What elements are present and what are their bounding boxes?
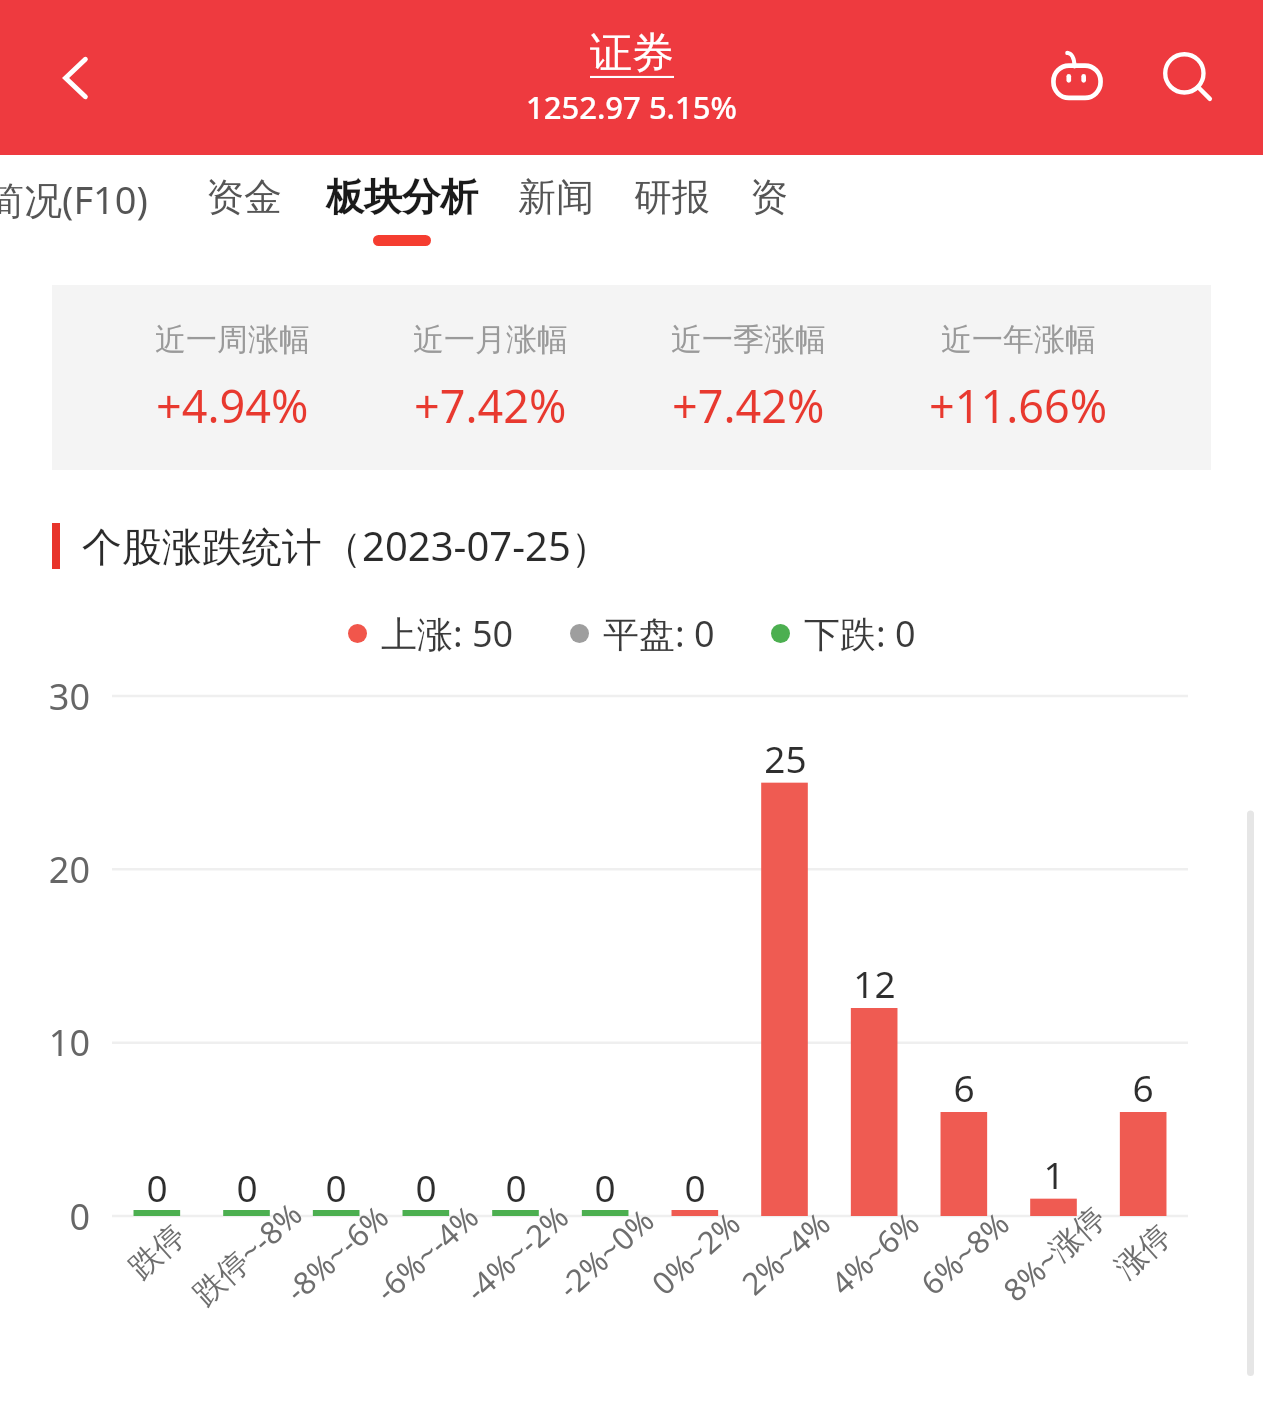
staticText: 0 [325,1162,347,1212]
staticText: 0%~2% [642,1202,748,1304]
staticText: 0 [594,1162,616,1212]
staticText: 0 [505,1162,527,1212]
staticText: +11.66% [929,375,1108,436]
staticText: 资金 [206,173,282,221]
staticText: 资 [750,173,788,221]
staticText: 平盘: 0 [603,609,715,658]
button[interactable]: 资金 [206,155,282,235]
staticText: 研报 [634,173,710,221]
staticText: 下跌: 0 [804,609,916,658]
staticText: 4%~6% [821,1202,927,1304]
button[interactable]: 资 [750,155,788,235]
staticText: 新闻 [518,173,594,221]
staticText: 证券 [590,27,674,80]
staticText: 25 [764,733,807,783]
staticText: 0 [69,1192,90,1241]
button[interactable]: 近一年涨幅 [929,320,1108,436]
staticText: +7.42% [414,375,567,436]
staticText: 1 [1043,1149,1065,1199]
staticText: 跌停 [121,1216,193,1287]
staticText: 1252.97 5.15% [526,86,737,128]
staticText: 30 [48,672,90,721]
button[interactable]: 近一月涨幅 [413,320,568,436]
button[interactable]: 新闻 [518,155,594,235]
staticText: -2%~0% [549,1199,662,1307]
button[interactable]: 简况(F10) [0,155,148,239]
button[interactable]: 下跌: 0 [771,609,916,658]
button[interactable]: 板块分析 [326,155,478,246]
staticText: 近一周涨幅 [155,320,310,359]
staticText: 12 [853,958,896,1008]
button[interactable]: 近一周涨幅 [155,320,310,436]
staticText: -6%~-4% [366,1196,487,1310]
staticText: 0 [684,1162,706,1212]
staticText: 跌停~-8% [183,1193,311,1313]
staticText: +7.42% [672,375,825,436]
staticText: -4%~-2% [456,1196,577,1310]
staticText: 10 [48,1018,90,1067]
staticText: 6%~8% [911,1202,1017,1304]
button[interactable]: Assistant robot [1029,30,1125,126]
button[interactable]: 上涨: 50 [348,609,514,658]
staticText: 涨停 [1107,1216,1179,1287]
staticText: 近一年涨幅 [941,320,1096,359]
staticText: 0 [146,1162,168,1212]
staticText: 板块分析 [326,173,478,221]
staticText: 0 [415,1162,437,1212]
staticText: 近一季涨幅 [671,320,826,359]
button[interactable]: 平盘: 0 [570,609,715,658]
staticText: 2%~4% [732,1202,838,1304]
staticText: 上涨: 50 [381,609,514,658]
staticText: 6 [1132,1062,1154,1112]
staticText: 个股涨跌统计（2023-07-25） [82,518,611,573]
staticText: -8%~-6% [276,1196,397,1310]
button[interactable]: Search [1141,30,1237,126]
staticText: 近一月涨幅 [413,320,568,359]
staticText: 0 [236,1162,258,1212]
staticText: 20 [48,845,90,894]
staticText: 6 [953,1062,975,1112]
staticText: +4.94% [156,375,309,436]
staticText: 简况(F10) [0,173,148,225]
button[interactable]: 近一季涨幅 [671,320,826,436]
button[interactable]: 研报 [634,155,710,235]
staticText: 8%~涨停 [994,1196,1114,1310]
button[interactable]: Back [28,30,124,126]
